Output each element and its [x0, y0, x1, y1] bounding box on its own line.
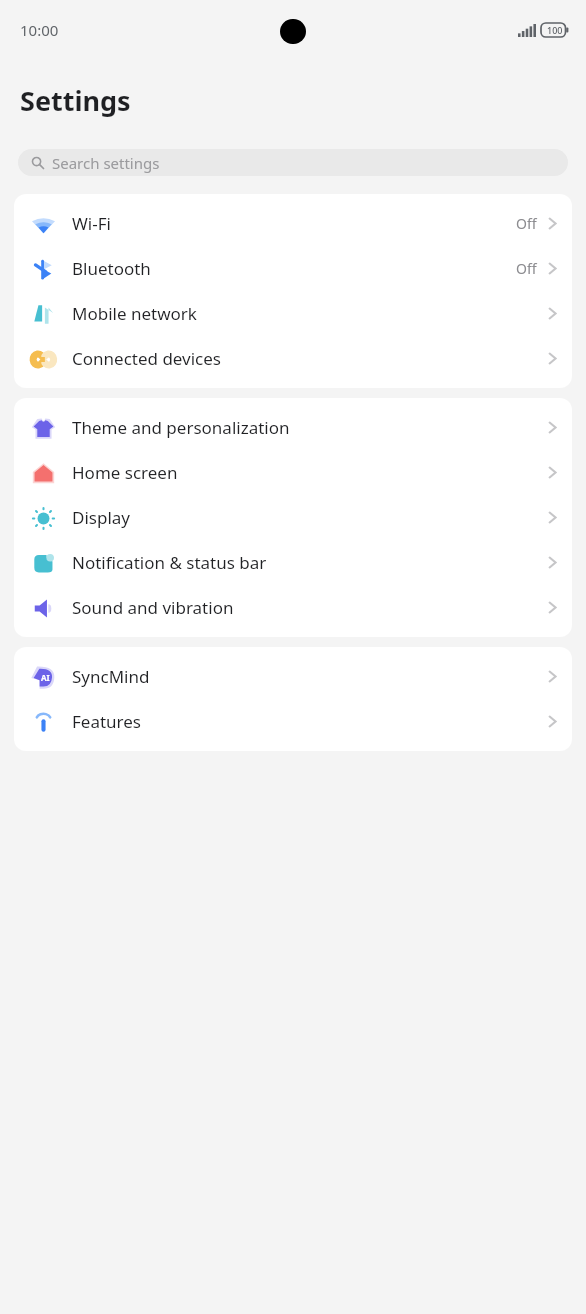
staticText: Connected devices	[72, 347, 548, 370]
staticText: Settings	[20, 82, 131, 119]
button[interactable]: Display	[14, 495, 572, 540]
button[interactable]: AI	[14, 654, 572, 699]
staticText: Mobile network	[72, 302, 548, 325]
button[interactable]: Bluetooth	[14, 246, 572, 291]
staticText: Search settings	[52, 153, 160, 173]
button[interactable]: Features	[14, 699, 572, 744]
staticText: AI	[41, 672, 50, 683]
staticText: Off	[516, 214, 537, 233]
staticText: 10:00	[20, 20, 59, 40]
staticText: Theme and personalization	[72, 416, 548, 439]
button[interactable]: Sound and vibration	[14, 585, 572, 630]
staticText: Sound and vibration	[72, 596, 548, 619]
button[interactable]: Search settings	[18, 149, 568, 176]
staticText: Bluetooth	[72, 257, 516, 280]
button[interactable]: Mobile network	[14, 291, 572, 336]
button[interactable]: Notification & status bar	[14, 540, 572, 585]
button[interactable]: Connected devices	[14, 336, 572, 381]
staticText: Wi-Fi	[72, 212, 516, 235]
staticText: SyncMind	[72, 665, 548, 688]
staticText: 100	[547, 24, 563, 36]
button[interactable]: Wi-Fi	[14, 201, 572, 246]
staticText: Notification & status bar	[72, 551, 548, 574]
button[interactable]: Theme and personalization	[14, 405, 572, 450]
staticText: Home screen	[72, 461, 548, 484]
staticText: Features	[72, 710, 548, 733]
staticText: Off	[516, 259, 537, 278]
button[interactable]: Home screen	[14, 450, 572, 495]
staticText: Display	[72, 506, 548, 529]
